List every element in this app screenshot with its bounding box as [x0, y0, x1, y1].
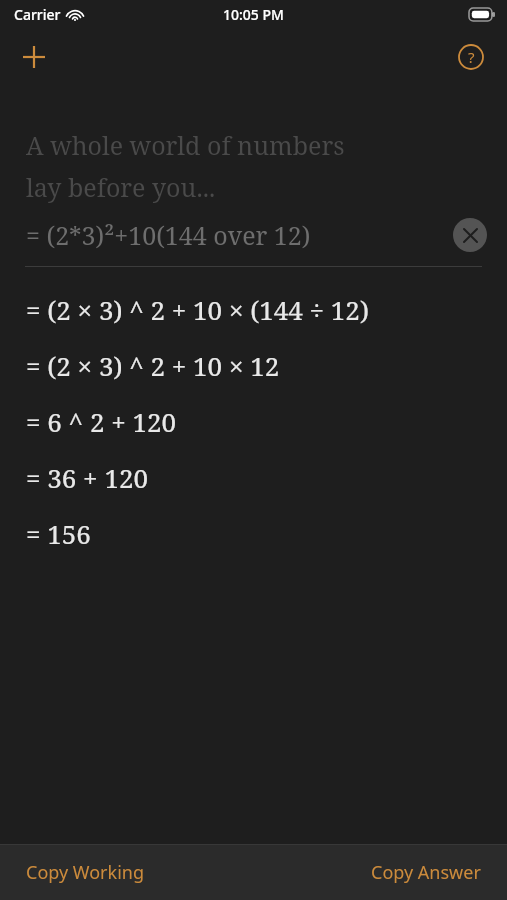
staticText: lay before you...	[26, 170, 216, 204]
button[interactable]: Add	[12, 35, 56, 79]
staticText: Carrier	[14, 5, 61, 24]
button[interactable]: Copy Answer	[253, 845, 507, 900]
staticText: ?	[468, 47, 475, 67]
button[interactable]: Clear	[453, 218, 487, 252]
button[interactable]: Help	[449, 35, 493, 79]
staticText: Copy Answer	[371, 860, 481, 885]
staticText: 10:05 PM	[223, 5, 284, 24]
staticText: = 6 ^ 2 + 120	[26, 404, 177, 439]
button[interactable]: = 6 ^ 2 + 120	[26, 393, 487, 449]
staticText: = (2 × 3) ^ 2 + 10 × 12	[26, 348, 280, 383]
button[interactable]: = (2 × 3) ^ 2 + 10 × (144 ÷ 12)	[26, 281, 487, 337]
button[interactable]: = (2*3)²+10(144 over 12)	[0, 204, 507, 266]
button[interactable]: Copy Working	[0, 845, 253, 900]
staticText: = (2*3)²+10(144 over 12)	[26, 218, 311, 252]
staticText: = 156	[26, 516, 91, 551]
staticText: = 36 + 120	[26, 460, 149, 495]
button[interactable]: = 156	[26, 505, 487, 561]
staticText: Copy Working	[26, 860, 144, 885]
staticText: A whole world of numbers	[26, 128, 345, 162]
staticText: = (2 × 3) ^ 2 + 10 × (144 ÷ 12)	[26, 292, 369, 327]
button[interactable]: = 36 + 120	[26, 449, 487, 505]
button[interactable]: = (2 × 3) ^ 2 + 10 × 12	[26, 337, 487, 393]
